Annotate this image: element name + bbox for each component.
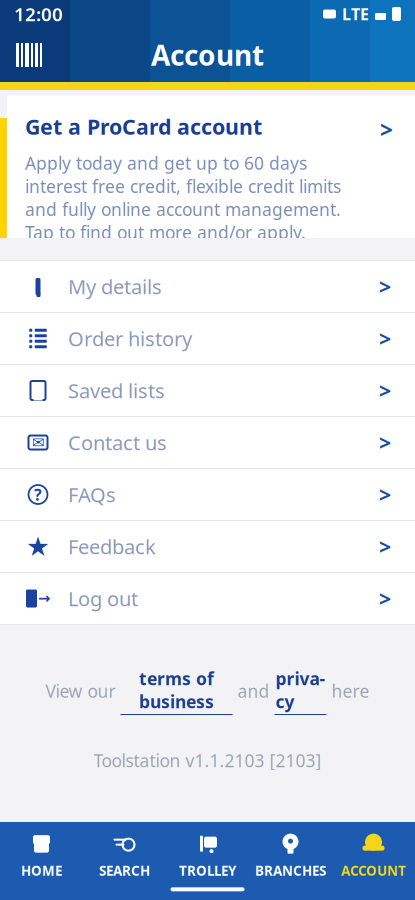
staticText: Contact us [68, 429, 167, 456]
staticText: Order history [68, 325, 192, 352]
staticText: → [38, 590, 50, 607]
button[interactable]: Order history [0, 313, 415, 365]
button[interactable]: Get a ProCard account [0, 118, 415, 238]
staticText: ✉ [32, 434, 44, 451]
button[interactable]: ★ [0, 521, 415, 573]
button[interactable]: My details [0, 261, 415, 313]
staticText: > [379, 584, 391, 613]
staticText: ? [34, 484, 42, 505]
button[interactable]: Scan barcode [6, 35, 52, 75]
staticText: Feedback [68, 533, 156, 560]
button[interactable]: SEARCH [83, 822, 166, 900]
staticText: HOME [21, 862, 62, 879]
button[interactable]: Saved lists [0, 365, 415, 417]
staticText: Account [151, 36, 264, 74]
staticText: privacy [275, 667, 325, 713]
staticText: Log out [68, 585, 138, 612]
staticText: TROLLEY [179, 862, 236, 879]
button[interactable]: → [0, 573, 415, 625]
button[interactable]: HOME [0, 822, 83, 900]
staticText: > [379, 480, 391, 509]
staticText: > [379, 272, 391, 301]
staticText: BRANCHES [255, 862, 326, 879]
staticText: > [379, 532, 391, 561]
staticText: ACCOUNT [341, 862, 406, 879]
button[interactable]: ? [0, 469, 415, 521]
staticText: LTE [342, 3, 369, 25]
staticText: > [379, 428, 391, 457]
staticText: and [232, 679, 274, 702]
staticText: ★ [26, 531, 50, 562]
staticText: My details [68, 273, 162, 300]
staticText: > [379, 376, 391, 405]
button[interactable]: TROLLEY [166, 822, 249, 900]
staticText: Toolstation v1.1.2103 [2103] [93, 749, 321, 772]
staticText: Get a ProCard account [25, 112, 262, 141]
staticText: here [326, 679, 369, 702]
button[interactable]: ACCOUNT [332, 822, 415, 900]
staticText: View our [45, 679, 120, 702]
staticText: FAQs [68, 481, 116, 508]
button[interactable]: BRANCHES [249, 822, 332, 900]
staticText: > [380, 114, 393, 144]
button[interactable]: terms of business [120, 667, 232, 715]
staticText: Saved lists [68, 377, 165, 404]
staticText: Apply today and get up to 60 days intere… [25, 152, 341, 244]
button[interactable]: ✉ [0, 417, 415, 469]
staticText: terms of business [139, 667, 214, 713]
button[interactable]: privacy [274, 667, 326, 715]
staticText: > [379, 324, 391, 353]
staticText: SEARCH [99, 862, 150, 879]
staticText: 12:00 [14, 2, 63, 26]
